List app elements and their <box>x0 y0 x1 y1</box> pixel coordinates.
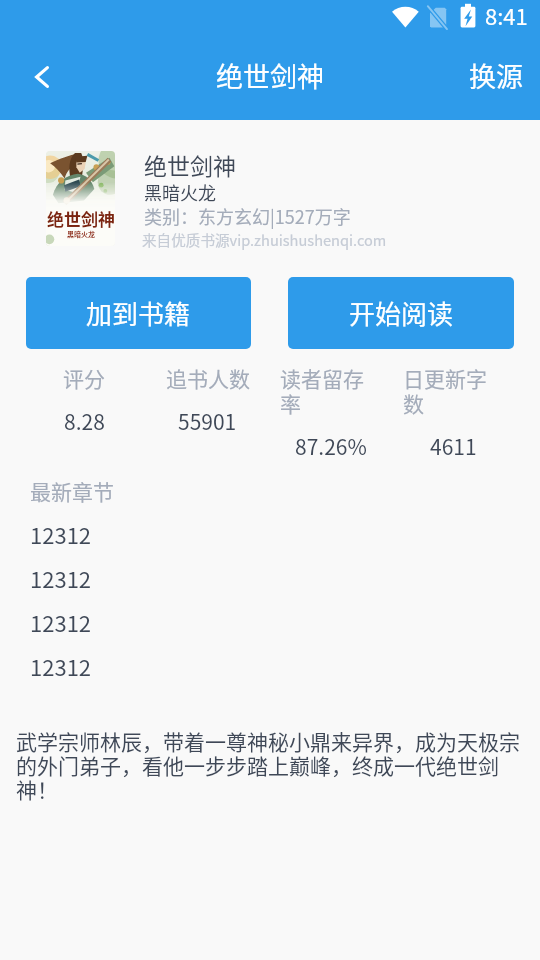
staticText: 8:41 <box>485 0 528 31</box>
staticText: 日更新字数 <box>403 363 504 418</box>
button[interactable]: 12312 <box>0 512 540 556</box>
staticText: 来自优质书源vip.zhuishushenqi.com <box>142 229 387 250</box>
staticText: 12312 <box>30 518 92 550</box>
staticText: 类别：东方玄幻|1527万字 <box>144 203 351 229</box>
staticText: 黑暗火龙 <box>67 229 95 239</box>
staticText: 87.26% <box>295 431 367 461</box>
staticText: 黑暗火龙 <box>144 179 216 205</box>
button[interactable]: 开始阅读 <box>288 277 514 349</box>
button[interactable]: 12312 <box>0 556 540 600</box>
staticText: 8.28 <box>64 406 105 436</box>
staticText: 最新章节 <box>30 476 114 506</box>
staticText: 12312 <box>30 650 92 682</box>
staticText: 绝世剑神 <box>144 148 236 181</box>
staticText: 55901 <box>178 406 237 436</box>
staticText: 加到书籍 <box>86 294 191 332</box>
staticText: 开始阅读 <box>349 294 454 332</box>
button[interactable]: Back <box>14 47 70 103</box>
button[interactable]: 加到书籍 <box>26 277 251 349</box>
staticText: 武学宗师林辰，带着一尊神秘小鼎来异界，成为天极宗的外门弟子，看他一步步踏上巅峰，… <box>16 726 520 804</box>
staticText: 评分 <box>63 363 105 393</box>
staticText: 绝世剑神 <box>216 56 324 95</box>
staticText: 读者留存率 <box>280 363 381 418</box>
button[interactable]: 12312 <box>0 644 540 688</box>
staticText: 12312 <box>30 562 92 594</box>
button[interactable]: 绝世剑神 book details <box>0 131 540 265</box>
button[interactable]: 换源 <box>452 44 540 107</box>
staticText: 12312 <box>30 606 92 638</box>
button[interactable]: 12312 <box>0 600 540 644</box>
staticText: 绝世剑神 <box>47 206 115 231</box>
staticText: 追书人数 <box>166 363 250 393</box>
staticText: 换源 <box>469 56 523 95</box>
staticText: 4611 <box>430 431 477 461</box>
